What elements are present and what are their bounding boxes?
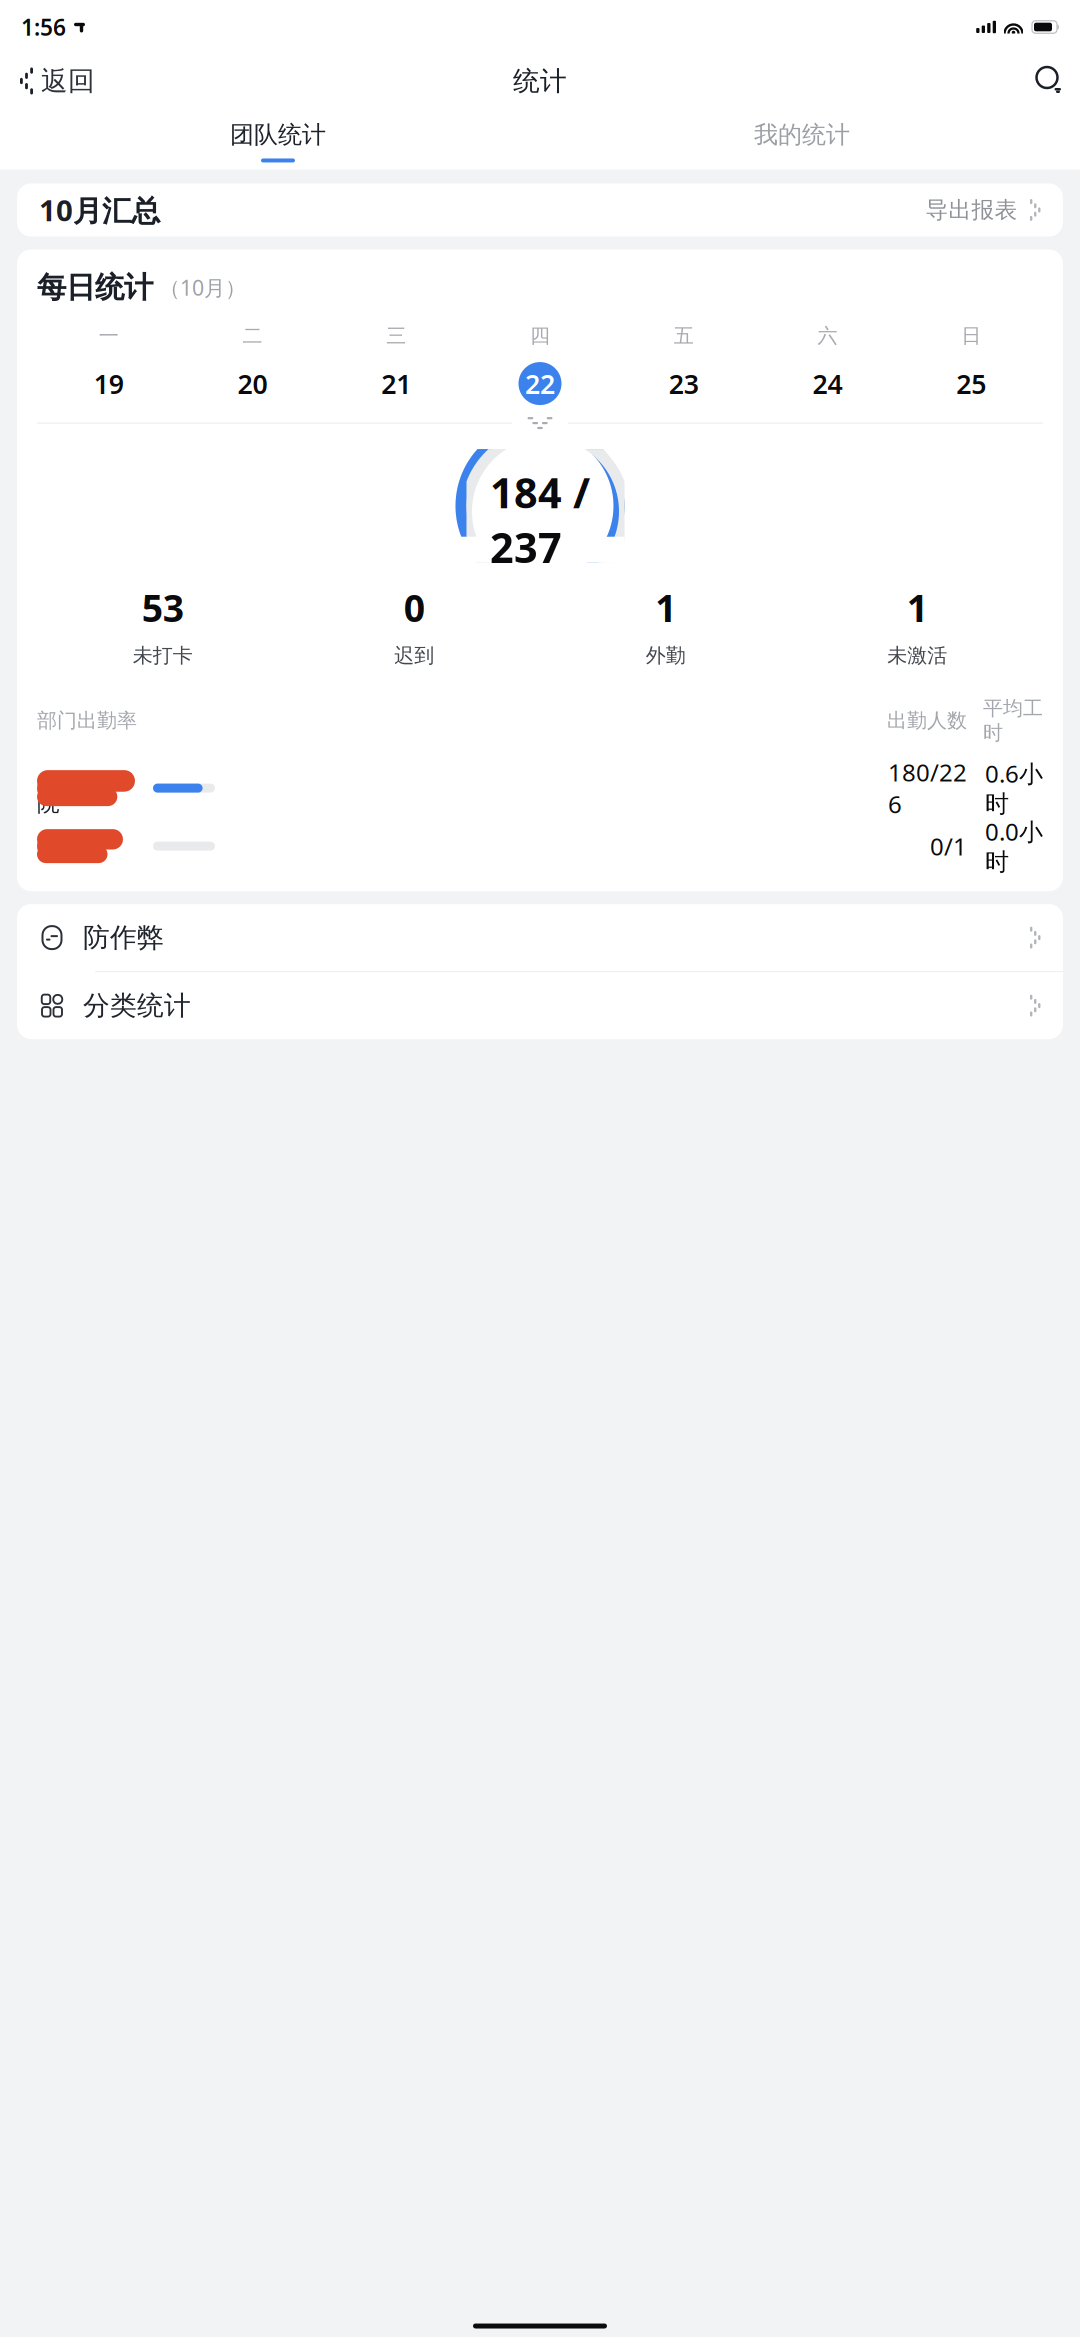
- staticText: 迟到: [394, 643, 434, 668]
- button[interactable]: 21: [324, 360, 468, 407]
- staticText: 19: [94, 366, 124, 401]
- staticText: 院: [37, 789, 60, 817]
- button[interactable]: 19: [37, 360, 181, 407]
- staticText: 一: [99, 323, 119, 348]
- button[interactable]: 防作弊: [17, 904, 1063, 971]
- button[interactable]: 0: [288, 579, 540, 672]
- staticText: 24: [812, 366, 842, 401]
- staticText: 53: [142, 583, 184, 632]
- staticText: 20: [238, 366, 268, 401]
- staticText: 统计: [513, 65, 567, 97]
- button[interactable]: 1: [540, 579, 791, 672]
- button[interactable]: 53: [37, 579, 288, 672]
- staticText: 我的统计: [754, 120, 850, 149]
- staticText: 未激活: [887, 643, 947, 668]
- staticText: [37, 845, 43, 875]
- staticText: 外勤: [646, 643, 686, 668]
- staticText: 部门出勤率: [37, 708, 137, 733]
- staticText: 日: [961, 323, 981, 348]
- staticText: 180/226: [888, 756, 967, 820]
- staticText: 四: [530, 323, 550, 348]
- button[interactable]: 展开日历: [37, 409, 1043, 437]
- staticText: 每日统计: [37, 269, 153, 305]
- staticText: 五: [674, 323, 694, 348]
- staticText: 0/1: [930, 830, 967, 862]
- button[interactable]: 24: [756, 360, 899, 407]
- staticText: 未打卡: [133, 643, 193, 668]
- staticText: 防作弊: [83, 921, 164, 954]
- staticText: 10月汇总: [39, 190, 160, 229]
- button[interactable]: 20: [181, 360, 324, 407]
- staticText: 导出报表: [925, 196, 1017, 224]
- staticText: 六: [817, 323, 837, 348]
- button[interactable]: 10月汇总: [17, 183, 1063, 236]
- staticText: 1: [907, 583, 928, 632]
- staticText: 返回: [41, 65, 95, 97]
- staticText: （10月）: [159, 273, 246, 302]
- staticText: 平均工时: [983, 696, 1043, 745]
- staticText: 三: [386, 323, 406, 348]
- button[interactable]: 返回: [8, 57, 107, 105]
- staticText: 分类统计: [83, 989, 191, 1022]
- staticText: 团队统计: [230, 120, 326, 149]
- button[interactable]: 团队统计: [16, 108, 540, 169]
- staticText: 二: [243, 323, 263, 348]
- staticText: 23: [669, 366, 699, 401]
- staticText: 25: [956, 366, 986, 401]
- staticText: 184 / 237: [490, 465, 590, 574]
- button[interactable]: 搜索: [1022, 60, 1072, 102]
- button[interactable]: 1: [791, 579, 1043, 672]
- staticText: 0: [404, 583, 425, 632]
- staticText: 0.0小时: [985, 815, 1043, 877]
- staticText: 22: [525, 366, 555, 401]
- staticText: 1:56: [21, 12, 66, 42]
- staticText: 21: [381, 366, 411, 401]
- staticText: 1: [655, 583, 676, 632]
- button[interactable]: 22: [468, 360, 612, 407]
- button[interactable]: 23: [612, 360, 756, 407]
- staticText: 出勤人数: [887, 708, 967, 733]
- staticText: 0.6小时: [985, 757, 1043, 819]
- button[interactable]: 分类统计: [17, 972, 1063, 1039]
- button[interactable]: 我的统计: [540, 108, 1064, 169]
- button[interactable]: 25: [899, 360, 1043, 407]
